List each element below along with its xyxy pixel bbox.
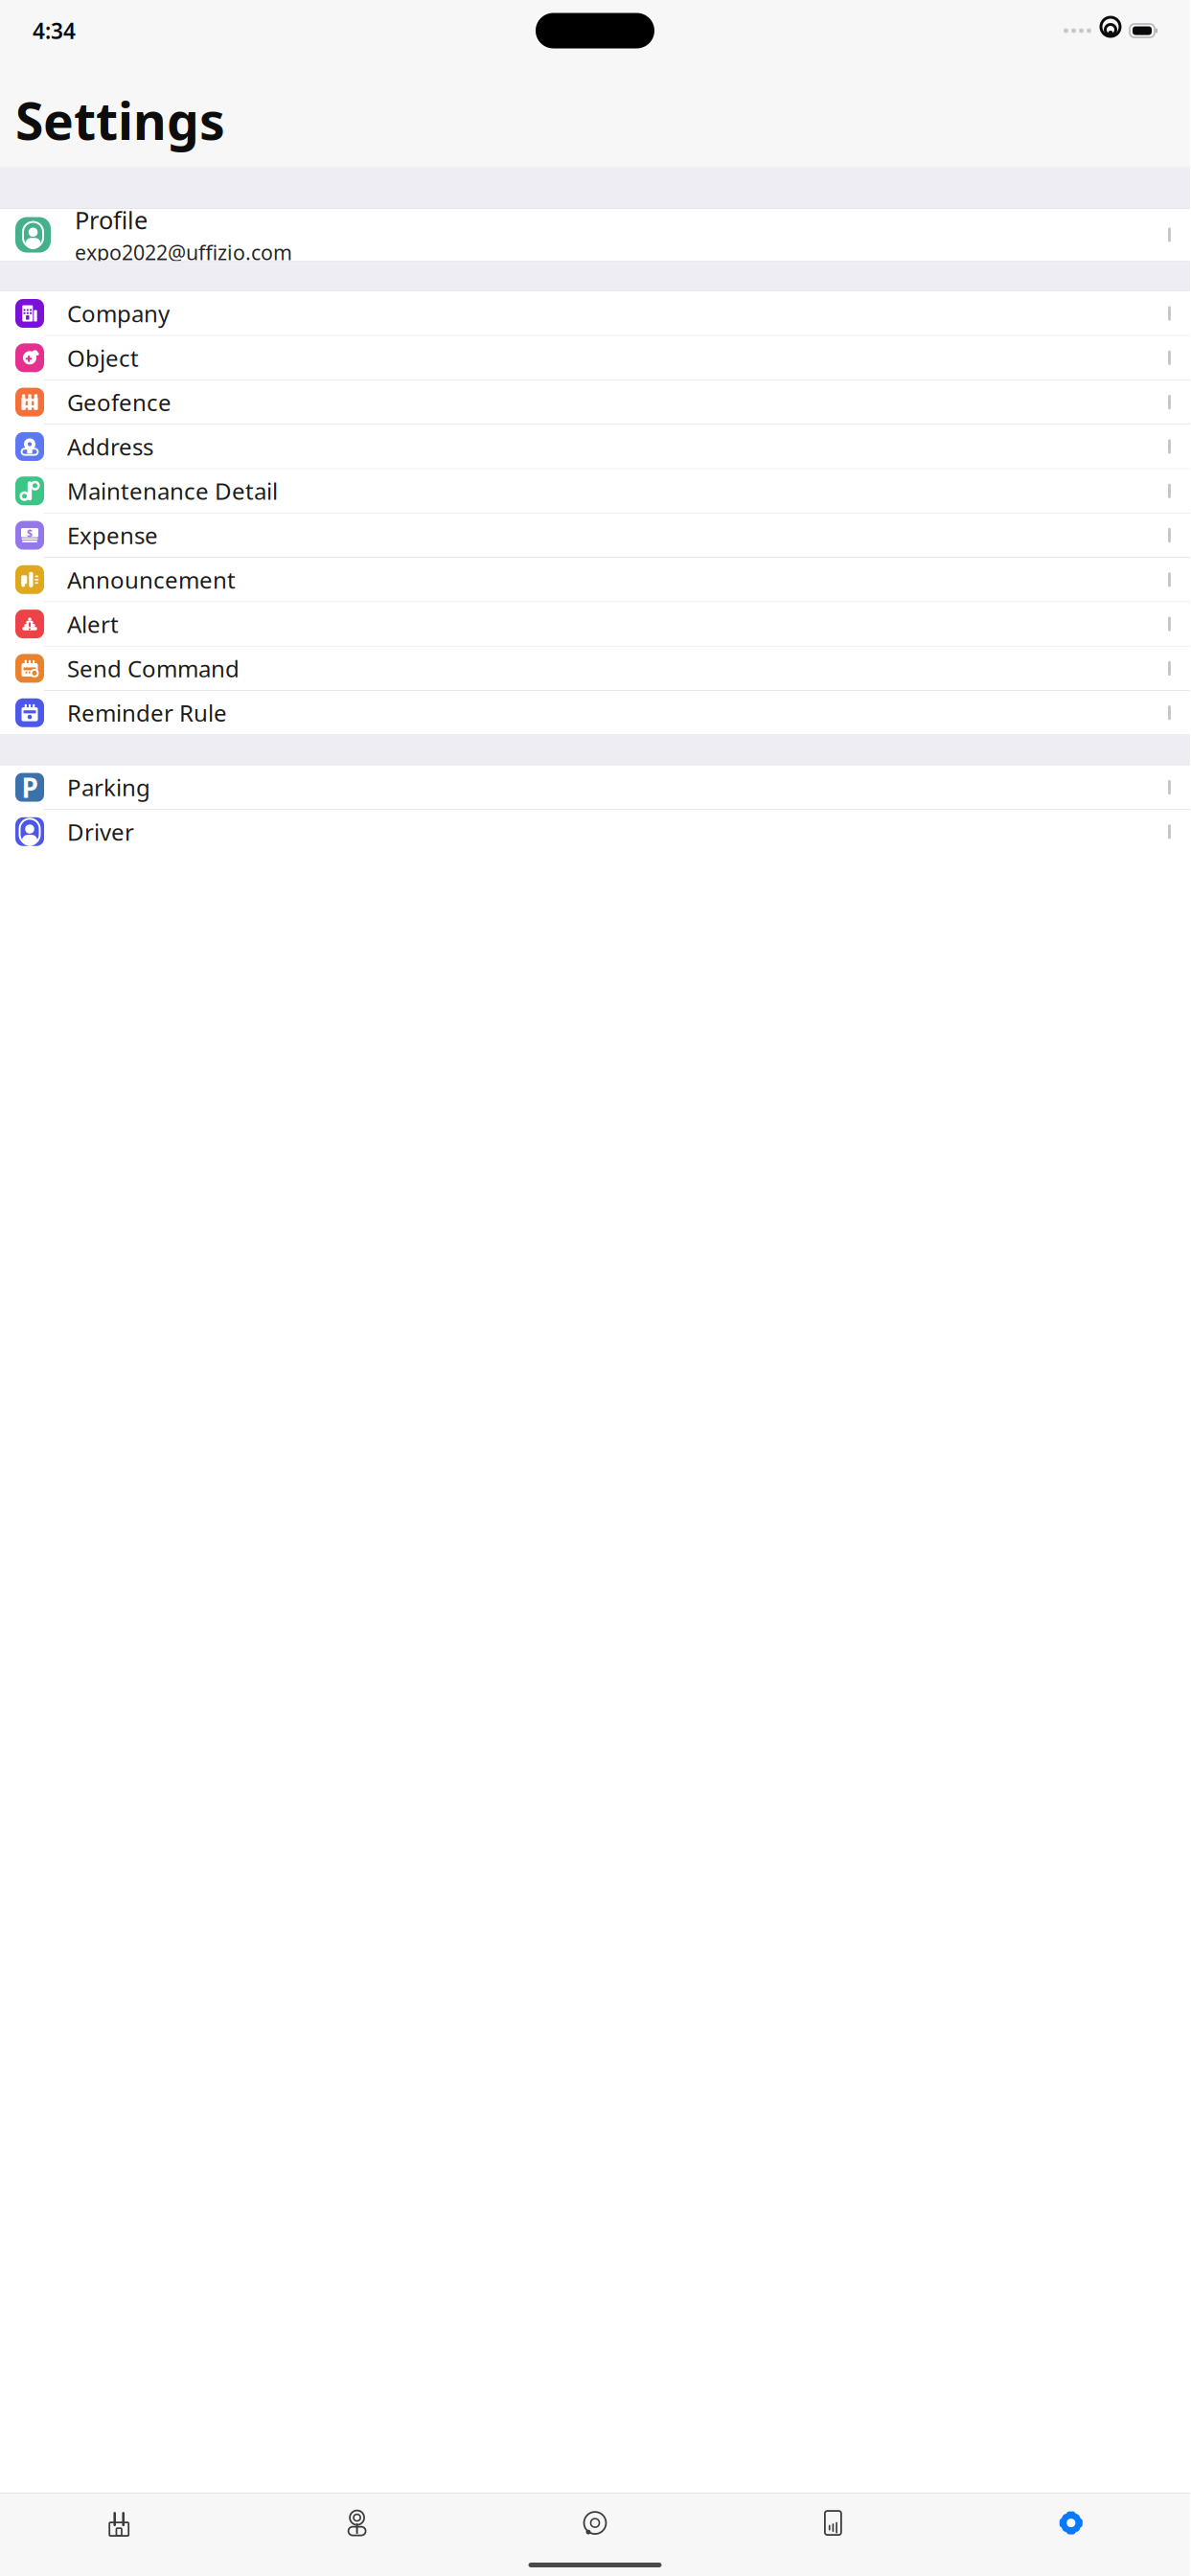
button[interactable]: Reminder Rule (0, 691, 1190, 735)
staticText: Object (67, 343, 139, 373)
button[interactable]: Company (0, 292, 1190, 335)
staticText: Geofence (67, 387, 172, 417)
staticText: Reminder Rule (67, 697, 227, 728)
staticText: expo2022@uffizio.com (75, 239, 292, 266)
staticText: Parking (67, 772, 150, 803)
button[interactable]: Messages (476, 2501, 714, 2545)
button[interactable]: Geofence (0, 380, 1190, 424)
staticText: Alert (67, 609, 119, 639)
button[interactable]: Maintenance Detail (0, 469, 1190, 513)
button[interactable]: Announcement (0, 558, 1190, 601)
button[interactable]: Reports (714, 2501, 952, 2545)
button[interactable]: Object (0, 336, 1190, 380)
staticText: Maintenance Detail (67, 476, 278, 506)
button[interactable]: Home (0, 2501, 238, 2545)
staticText: Company (67, 298, 170, 329)
button[interactable]: Map (238, 2501, 476, 2545)
button[interactable]: $ (0, 513, 1190, 557)
staticText: Driver (67, 816, 134, 847)
button[interactable]: Driver (0, 810, 1190, 853)
staticText: P (22, 769, 38, 805)
button[interactable]: Profile (0, 209, 1190, 261)
staticText: Profile (75, 204, 148, 236)
button[interactable]: Settings (952, 2501, 1190, 2545)
staticText: Expense (67, 520, 158, 551)
button[interactable]: P (0, 765, 1190, 809)
staticText: Send Command (67, 653, 240, 684)
staticText: 4:34 (33, 16, 76, 45)
button[interactable]: Address (0, 425, 1190, 468)
staticText: Announcement (67, 564, 236, 595)
staticText: $ (27, 526, 33, 539)
button[interactable]: Alert (0, 602, 1190, 646)
staticText: Settings (15, 86, 225, 154)
button[interactable]: Send Command (0, 646, 1190, 690)
staticText: Address (67, 431, 153, 462)
